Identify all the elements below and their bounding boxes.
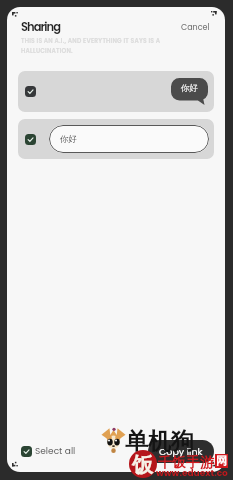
staticText: 网	[216, 454, 227, 468]
staticText: www.eduext.com	[156, 467, 233, 480]
button[interactable]: Copy link	[148, 440, 214, 463]
staticText: 千饭手游	[158, 454, 214, 472]
staticText: Sharing	[21, 19, 60, 35]
staticText: 你好	[181, 83, 198, 94]
button[interactable]: 你好	[18, 71, 214, 112]
staticText: THIS IS AN A.I., AND EVERYTHING IT SAYS …	[21, 37, 172, 55]
button[interactable]: Select all	[21, 441, 76, 462]
staticText: 你好	[60, 134, 77, 145]
staticText: Copy link	[159, 445, 203, 458]
staticText: 饭	[132, 452, 153, 478]
staticText: Select all	[35, 445, 76, 458]
staticText: Cancel	[181, 22, 210, 33]
button[interactable]: 你好	[18, 119, 214, 159]
staticText: 单机狗	[125, 427, 194, 456]
button[interactable]: Cancel	[178, 19, 213, 34]
